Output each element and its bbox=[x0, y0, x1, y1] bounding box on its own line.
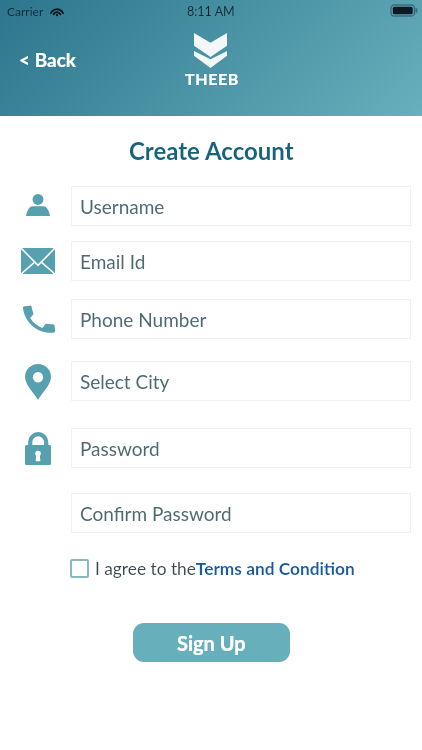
staticText: Email Id bbox=[80, 250, 146, 273]
other: Password bbox=[25, 432, 51, 465]
other: Phone bbox=[23, 304, 54, 335]
staticText: I agree to theTerms and Condition bbox=[95, 558, 355, 579]
staticText: < Back bbox=[19, 48, 76, 71]
staticText: Sign Up bbox=[177, 631, 246, 655]
other: Email bbox=[21, 248, 55, 274]
staticText: Username bbox=[80, 195, 165, 218]
staticText: Create Account bbox=[129, 136, 294, 165]
button[interactable]: Password bbox=[71, 428, 411, 468]
button[interactable]: Select City bbox=[71, 361, 411, 401]
staticText: Password bbox=[80, 437, 160, 460]
staticText: Carrier bbox=[7, 4, 44, 18]
button[interactable]: I agree to theTerms and Condition bbox=[70, 558, 355, 579]
staticText: Confirm Password bbox=[80, 502, 232, 525]
button[interactable]: Sign Up bbox=[133, 623, 290, 662]
button[interactable]: Confirm Password bbox=[71, 493, 411, 533]
other: Location bbox=[25, 364, 51, 400]
other: User bbox=[26, 194, 50, 216]
staticText: Phone Number bbox=[80, 308, 207, 331]
button[interactable]: Username bbox=[71, 186, 411, 226]
staticText: THEEB bbox=[185, 69, 239, 88]
button[interactable]: Phone Number bbox=[71, 299, 411, 339]
button[interactable]: Email Id bbox=[71, 241, 411, 281]
button[interactable]: < Back bbox=[14, 45, 81, 74]
staticText: Select City bbox=[80, 370, 170, 393]
staticText: 8:11 AM bbox=[187, 4, 235, 19]
